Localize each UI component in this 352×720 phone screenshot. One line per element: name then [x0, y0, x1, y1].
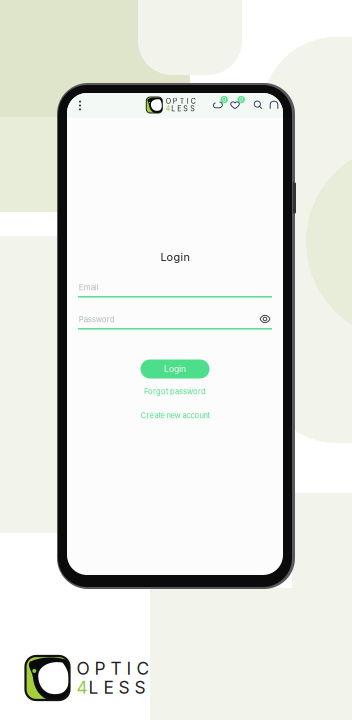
staticText: Forgot password	[144, 387, 206, 396]
staticText: L E S S	[171, 104, 195, 113]
button[interactable]: Search	[250, 96, 266, 114]
staticText: 0	[222, 96, 226, 103]
button[interactable]: Create new account	[125, 409, 225, 421]
button[interactable]: Home	[266, 96, 282, 114]
button[interactable]: Forgot password	[130, 385, 220, 397]
staticText: O P T I C	[166, 97, 196, 105]
staticText: 4	[166, 104, 171, 113]
button[interactable]: Show password	[258, 312, 272, 325]
staticText: Login	[160, 250, 189, 264]
button[interactable]: Login	[140, 359, 209, 378]
button[interactable]: Compare	[210, 95, 230, 115]
staticText: Login	[164, 364, 186, 374]
staticText: Password	[79, 315, 115, 324]
staticText: 0	[239, 96, 243, 103]
staticText: Create new account	[140, 411, 209, 420]
staticText: O P T I C	[76, 658, 149, 679]
staticText: 4	[76, 677, 87, 698]
button[interactable]: Menu	[71, 94, 89, 116]
staticText: Email	[79, 283, 99, 292]
staticText: L E S S	[88, 677, 145, 698]
button[interactable]: Wishlist	[227, 95, 247, 115]
